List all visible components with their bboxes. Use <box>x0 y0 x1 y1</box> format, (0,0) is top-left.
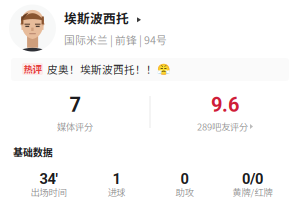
staticText: 助攻 <box>175 185 193 199</box>
staticText: 热评 <box>23 62 41 76</box>
staticText: 0 <box>180 170 188 188</box>
staticText: 289吧友评分 <box>197 120 248 133</box>
button[interactable]: 埃斯波西托 <box>9 4 299 51</box>
button[interactable]: 9.6 <box>150 89 300 135</box>
staticText: 9.6 <box>211 93 239 117</box>
staticText: 埃斯波西托 <box>64 9 129 27</box>
staticText: 34' <box>39 170 57 188</box>
staticText: 黄牌/红牌 <box>232 185 272 199</box>
staticText: 进球 <box>107 185 125 199</box>
staticText: 媒体评分 <box>57 120 93 133</box>
staticText: 基础数据 <box>13 145 53 159</box>
staticText: 皮奥！埃斯波西托！！😤 <box>47 61 170 77</box>
staticText: 国际米兰 | 前锋 | 94号 <box>64 32 167 47</box>
staticText: 出场时间 <box>30 185 66 199</box>
button[interactable]: 7 <box>0 89 150 135</box>
staticText: 1 <box>112 170 120 188</box>
staticText: 0/0 <box>242 170 263 188</box>
staticText: 7 <box>69 93 80 117</box>
button[interactable]: 热评 <box>22 57 300 81</box>
